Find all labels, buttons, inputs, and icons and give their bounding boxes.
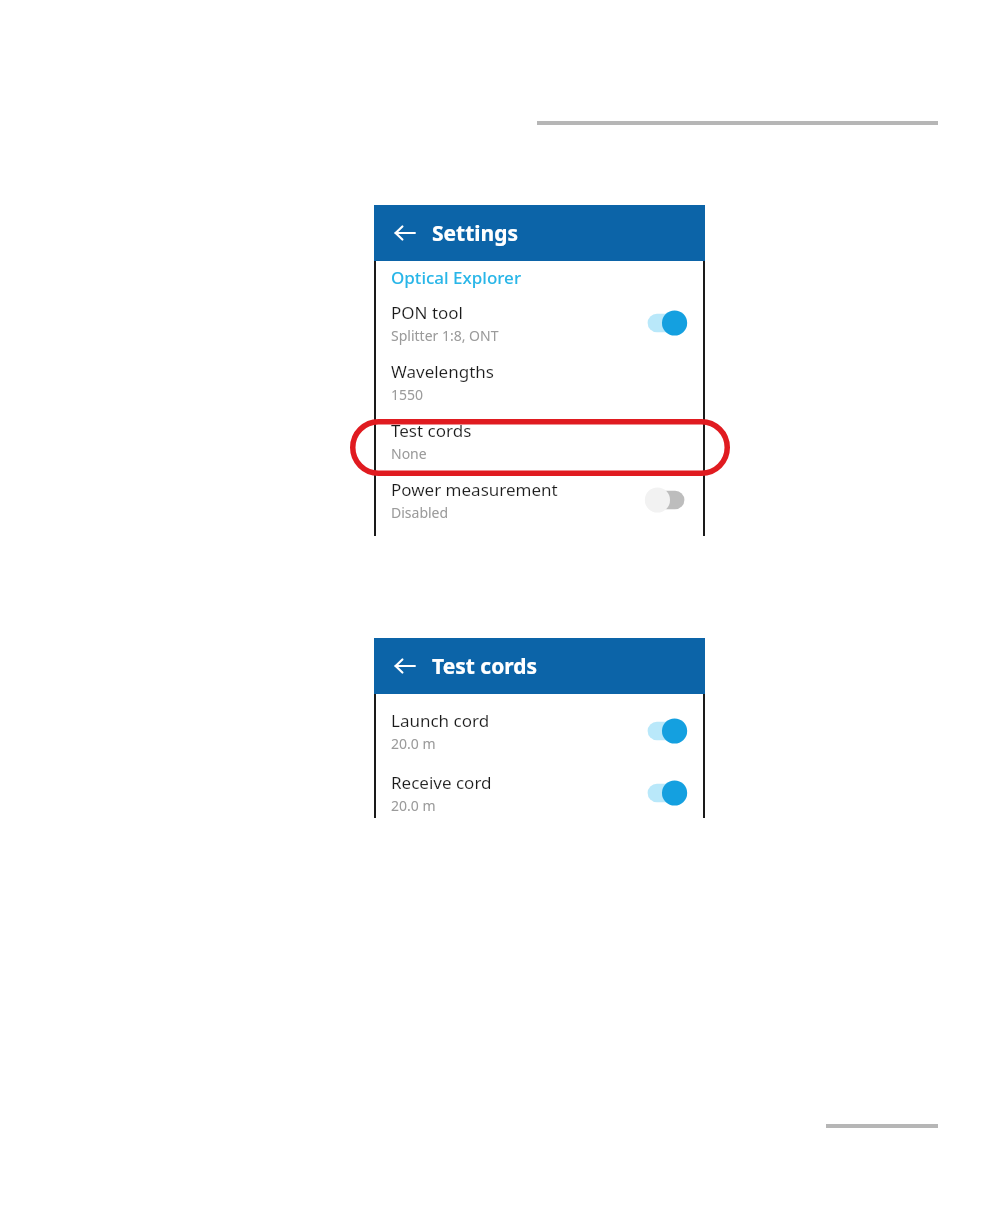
staticText: Disabled: [391, 503, 449, 522]
button[interactable]: Test cords: [374, 411, 705, 470]
staticText: 1550: [391, 385, 424, 404]
staticText: Receive cord: [391, 771, 492, 794]
staticText: Test cords: [432, 652, 538, 681]
staticText: Test cords: [391, 419, 472, 442]
staticText: Power measurement: [391, 478, 558, 501]
button[interactable]: Receive cord: [374, 767, 705, 818]
staticText: Splitter 1:8, ONT: [391, 326, 499, 345]
button[interactable]: Launch cord: [374, 702, 705, 759]
button[interactable]: Toggle on: [643, 308, 689, 338]
button[interactable]: Back: [388, 216, 422, 250]
staticText: 20.0 m: [391, 734, 436, 753]
button[interactable]: Toggle on: [643, 716, 689, 746]
staticText: 20.0 m: [391, 796, 436, 815]
button[interactable]: Power measurement: [374, 470, 705, 529]
button[interactable]: Toggle on: [643, 778, 689, 808]
staticText: Launch cord: [391, 709, 490, 732]
button[interactable]: Toggle off: [643, 485, 689, 515]
staticText: None: [391, 444, 427, 463]
button[interactable]: Wavelengths: [374, 352, 705, 411]
staticText: Optical Explorer: [391, 266, 522, 289]
staticText: Settings: [432, 219, 519, 248]
button[interactable]: Back: [388, 649, 422, 683]
staticText: Wavelengths: [391, 360, 494, 383]
staticText: PON tool: [391, 301, 463, 324]
button[interactable]: PON tool: [374, 293, 705, 352]
